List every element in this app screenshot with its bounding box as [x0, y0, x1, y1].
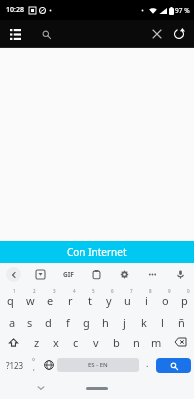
button[interactable]: 6	[99, 287, 118, 309]
staticText: 97 %	[175, 6, 190, 15]
staticText: c	[73, 335, 79, 350]
staticText: 4	[73, 288, 76, 294]
button[interactable]: Clear	[147, 24, 167, 44]
staticText: u	[124, 293, 131, 308]
button[interactable]: Refresh	[169, 24, 189, 44]
button[interactable]: 5	[80, 287, 99, 309]
staticText: 8	[149, 288, 152, 294]
staticText: v	[93, 335, 99, 350]
staticText: a	[9, 315, 16, 330]
button[interactable]: Symbols	[26, 353, 40, 377]
button[interactable]: f	[58, 309, 77, 331]
staticText: 1	[13, 288, 16, 294]
button[interactable]: g	[77, 309, 96, 331]
button[interactable]: 1	[0, 287, 20, 309]
button[interactable]: Settings	[110, 263, 138, 285]
staticText: GIF	[63, 270, 74, 279]
staticText: 0	[187, 288, 190, 294]
button[interactable]: d	[39, 309, 58, 331]
staticText: l	[161, 315, 164, 330]
staticText: h	[102, 315, 109, 330]
button[interactable]: More options	[138, 263, 166, 285]
staticText: m	[151, 335, 162, 350]
staticText: 7	[130, 288, 133, 294]
button[interactable]: 4	[60, 287, 80, 309]
staticText: t	[88, 293, 92, 308]
staticText: e	[47, 293, 54, 308]
button[interactable]: l	[153, 309, 172, 331]
button[interactable]: z	[27, 331, 46, 353]
button[interactable]: ?123	[3, 353, 26, 377]
staticText: z	[34, 335, 40, 350]
button[interactable]: 3	[40, 287, 60, 309]
staticText: 3	[53, 288, 56, 294]
button[interactable]: ñ	[172, 309, 191, 331]
staticText: s	[27, 315, 33, 330]
staticText: p	[181, 293, 188, 308]
button[interactable]: x	[46, 331, 66, 353]
button[interactable]: Clipboard	[82, 263, 110, 285]
button[interactable]: Con Internet	[0, 241, 194, 263]
staticText: y	[106, 293, 112, 308]
staticText: ,	[33, 363, 35, 373]
staticText: i	[145, 293, 148, 308]
staticText: f	[66, 315, 70, 330]
staticText: d	[45, 315, 52, 330]
button[interactable]: v	[86, 331, 106, 353]
staticText: 2	[33, 288, 36, 294]
button[interactable]: GIF	[54, 263, 82, 285]
button[interactable]: Search	[36, 24, 56, 44]
staticText: ñ	[178, 315, 185, 330]
button[interactable]: 7	[118, 287, 137, 309]
staticText: x	[53, 335, 59, 350]
button[interactable]: Shift	[0, 331, 27, 353]
staticText: q	[7, 293, 14, 308]
button[interactable]: ES - EN	[57, 358, 139, 372]
button[interactable]: 0	[175, 287, 194, 309]
button[interactable]: Stickers	[27, 263, 54, 285]
staticText: 6	[111, 288, 114, 294]
button[interactable]: 8	[137, 287, 156, 309]
button[interactable]: Change language	[40, 353, 57, 377]
button[interactable]: n	[126, 331, 146, 353]
button[interactable]: .	[139, 353, 156, 377]
button[interactable]: 2	[20, 287, 40, 309]
staticText: r	[68, 293, 73, 308]
button[interactable]: s	[21, 309, 39, 331]
button[interactable]: Search	[156, 358, 191, 373]
staticText: ?123	[6, 360, 24, 371]
button[interactable]: Voice input	[166, 263, 194, 285]
staticText: g	[83, 315, 90, 330]
staticText: 5	[92, 288, 95, 294]
staticText: 9	[168, 288, 171, 294]
staticText: .	[146, 357, 149, 369]
staticText: b	[113, 335, 120, 350]
staticText: k	[141, 315, 147, 330]
button[interactable]: k	[134, 309, 153, 331]
staticText: n	[133, 335, 140, 350]
button[interactable]: a	[3, 309, 21, 331]
button[interactable]: Hide keyboard	[33, 380, 49, 396]
staticText: w	[26, 293, 35, 308]
staticText: j	[123, 315, 126, 330]
staticText: Con Internet	[67, 245, 127, 259]
button[interactable]: Menu	[5, 24, 25, 44]
button[interactable]: Backspace	[166, 331, 194, 353]
button[interactable]: j	[115, 309, 134, 331]
staticText: 10:28	[6, 5, 24, 15]
button[interactable]: 9	[156, 287, 175, 309]
button[interactable]: h	[96, 309, 115, 331]
button[interactable]: c	[66, 331, 86, 353]
button[interactable]: b	[106, 331, 126, 353]
button[interactable]: Home	[86, 387, 108, 390]
staticText: o	[162, 293, 169, 308]
staticText: ES - EN	[88, 361, 108, 369]
button[interactable]: Back	[0, 263, 27, 285]
button[interactable]: m	[146, 331, 166, 353]
